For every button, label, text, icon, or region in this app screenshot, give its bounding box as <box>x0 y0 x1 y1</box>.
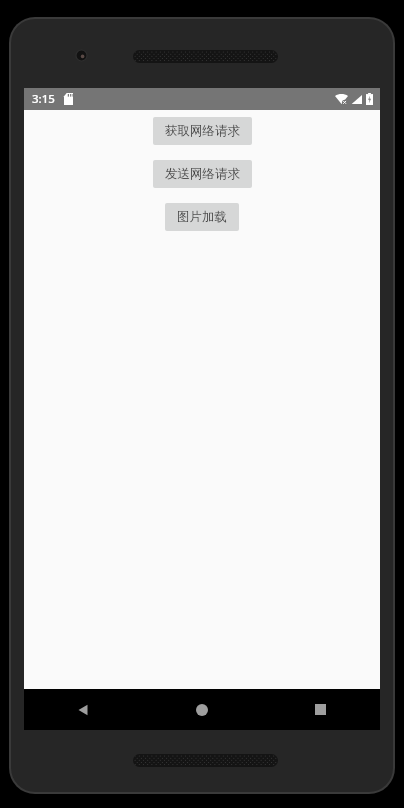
staticText: 3:15 <box>32 91 55 107</box>
staticText: 发送网络请求 <box>165 166 240 182</box>
staticText: 图片加载 <box>177 209 227 225</box>
button[interactable]: Home <box>142 689 261 730</box>
button[interactable]: 图片加载 <box>165 203 239 231</box>
staticText: 获取网络请求 <box>165 123 240 139</box>
button[interactable]: Back <box>24 689 142 730</box>
button[interactable]: Recent apps <box>261 689 380 730</box>
button[interactable]: 获取网络请求 <box>153 117 252 145</box>
button[interactable]: 发送网络请求 <box>153 160 252 188</box>
